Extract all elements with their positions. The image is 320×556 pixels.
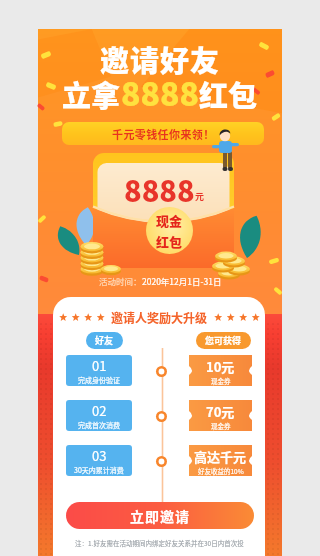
staticText: 立即邀请: [130, 506, 190, 526]
staticText: 元: [195, 190, 205, 203]
staticText: 现金券: [211, 376, 231, 385]
button[interactable]: 02: [66, 400, 132, 431]
staticText: 好友: [95, 334, 114, 347]
button[interactable]: 10元: [189, 355, 252, 386]
staticText: 70元: [206, 402, 235, 421]
staticText: 千元零钱任你来领！: [112, 126, 215, 142]
staticText: 03: [92, 446, 107, 465]
staticText: 活动时间：: [99, 275, 142, 287]
staticText: 01: [92, 356, 107, 375]
staticText: 完成身份验证: [78, 375, 120, 385]
staticText: 立拿: [62, 73, 121, 115]
button[interactable]: 立即邀请: [66, 502, 254, 529]
staticText: 02: [92, 401, 107, 420]
button[interactable]: 01: [66, 355, 132, 386]
staticText: 现金券: [211, 421, 231, 430]
staticText: 现金: [156, 211, 183, 230]
button[interactable]: 70元: [189, 400, 252, 431]
staticText: 2020年12月1日-31日: [142, 275, 222, 287]
staticText: 邀请人奖励大升级: [111, 309, 208, 326]
staticText: 高达千元: [194, 447, 247, 466]
staticText: 30天内累计消费: [74, 465, 124, 475]
staticText: 8888: [124, 168, 195, 210]
staticText: 好友收益的10%: [198, 466, 244, 475]
staticText: 邀请好友: [100, 38, 221, 80]
staticText: 红包: [156, 232, 183, 251]
button[interactable]: 03: [66, 445, 132, 476]
button[interactable]: 好友: [95, 334, 114, 347]
staticText: 8888: [121, 69, 199, 115]
staticText: 红包: [199, 73, 258, 115]
button[interactable]: 现金: [146, 207, 193, 254]
button[interactable]: 千元零钱任你来领！: [62, 122, 264, 145]
staticText: 注：1.好友需在活动期间内绑定好友关系并在30日内首次投: [75, 538, 244, 547]
staticText: 10元: [206, 357, 235, 376]
button[interactable]: 您可获得: [205, 334, 242, 347]
button[interactable]: 高达千元: [189, 445, 252, 476]
staticText: 您可获得: [205, 334, 242, 347]
staticText: 完成首次消费: [78, 420, 120, 430]
